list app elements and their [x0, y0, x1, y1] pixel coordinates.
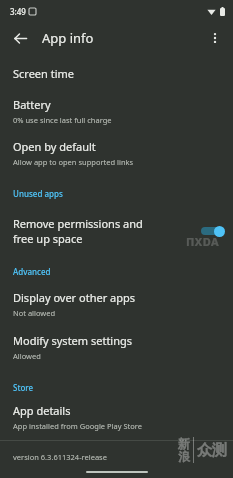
button[interactable]: Open by default [0, 135, 233, 170]
button[interactable]: Remove permissions and free up space [0, 208, 233, 254]
staticText: Allowed [13, 351, 41, 361]
staticText: 0% use since last full charge [13, 115, 112, 125]
staticText: ΠXDA [186, 234, 220, 249]
staticText: Display over other apps [13, 290, 136, 305]
button[interactable]: Modify system settings [0, 330, 233, 364]
staticText: App details [13, 403, 71, 418]
staticText: Battery [13, 97, 51, 112]
button[interactable]: Back [6, 24, 34, 52]
staticText: version 6.3.611324-release [13, 452, 107, 462]
staticText: Unused apps [13, 188, 63, 199]
button[interactable]: More options [201, 24, 229, 52]
staticText: Screen time [13, 66, 75, 81]
staticText: 新 浪 [178, 436, 190, 464]
staticText: Store [13, 382, 34, 393]
staticText: Advanced [13, 266, 51, 277]
staticText: Modify system settings [13, 333, 133, 348]
staticText: App info [42, 29, 94, 47]
staticText: 3:49 [10, 6, 26, 17]
button[interactable]: App details [0, 400, 233, 434]
staticText: Remove permissions and free up space [13, 216, 161, 246]
staticText: Allow app to open supported links [13, 157, 134, 167]
staticText: Open by default [13, 139, 96, 154]
staticText: 众测 [197, 441, 227, 460]
staticText: App installed from Google Play Store [13, 421, 142, 431]
button[interactable]: Display over other apps [0, 287, 233, 321]
button[interactable]: Screen time [0, 60, 233, 86]
staticText: Not allowed [13, 308, 56, 318]
button[interactable]: Battery [0, 93, 233, 128]
